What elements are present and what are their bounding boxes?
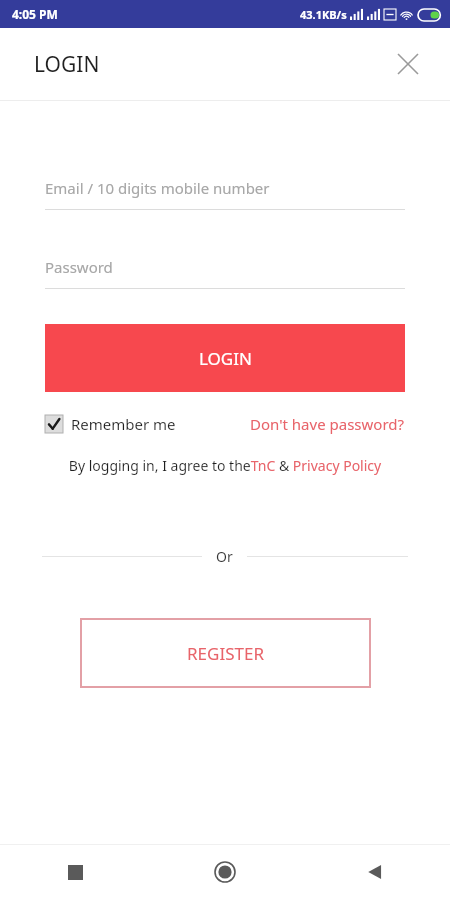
staticText: Or (216, 547, 233, 566)
button[interactable]: Email / 10 digits mobile number (45, 171, 405, 205)
button[interactable]: Don't have password? (250, 414, 405, 434)
staticText: 43.1KB/s (300, 7, 347, 22)
button[interactable]: Remember me (45, 414, 176, 434)
button[interactable]: Password (45, 250, 405, 284)
staticText: Email / 10 digits mobile number (45, 178, 270, 198)
staticText: REGISTER (187, 642, 264, 665)
staticText: Password (45, 257, 113, 277)
button[interactable]: Recent apps (0, 844, 150, 900)
staticText: Remember me (71, 414, 176, 434)
button[interactable]: By logging in, I agree to theTnC & Priva… (55, 456, 395, 475)
staticText: LOGIN (34, 50, 100, 79)
button[interactable]: Back (300, 844, 450, 900)
staticText: LOGIN (199, 347, 252, 370)
staticText: Don't have password? (250, 414, 405, 434)
staticText: 4:05 PM (12, 6, 58, 22)
button[interactable]: Close (388, 44, 428, 84)
staticText: By logging in, I agree to theTnC & Priva… (55, 456, 395, 475)
button[interactable]: LOGIN (45, 324, 405, 392)
button[interactable]: REGISTER (80, 618, 371, 688)
button[interactable]: Home (150, 844, 300, 900)
